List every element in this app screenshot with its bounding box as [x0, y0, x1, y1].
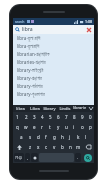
staticText: library — [43, 106, 56, 111]
button[interactable]: library-গ্রন্থাগার — [13, 74, 94, 82]
button[interactable]: 2 — [22, 112, 30, 122]
button[interactable]: j — [66, 132, 74, 142]
button[interactable]: d — [34, 132, 42, 142]
button[interactable]: Shift — [13, 142, 26, 152]
staticText: z — [29, 144, 32, 150]
button[interactable]: u — [62, 122, 70, 132]
button[interactable]: libraries — [72, 105, 87, 112]
staticText: librarian-গ্রন্থাগারিক — [17, 51, 50, 57]
staticText: m — [76, 144, 81, 150]
button[interactable]: q — [13, 122, 22, 132]
staticText: n — [69, 144, 72, 150]
staticText: 0 — [89, 114, 92, 120]
button[interactable]: libra-তুলা রাশি — [13, 34, 94, 42]
button[interactable]: library — [42, 105, 57, 112]
button[interactable]: n — [66, 142, 74, 152]
button[interactable]: library-পুস্তকাগার — [13, 90, 94, 98]
staticText: libra-তুলারাশি — [17, 43, 40, 49]
staticText: d — [37, 134, 40, 140]
button[interactable]: b — [58, 142, 66, 152]
staticText: 4 — [41, 114, 44, 120]
button[interactable]: y — [54, 122, 62, 132]
button[interactable]: z — [26, 142, 34, 152]
staticText: 9 — [81, 114, 84, 120]
staticText: ?1☺ — [15, 155, 23, 160]
staticText: libra — [16, 106, 25, 111]
staticText: , — [27, 155, 29, 160]
button[interactable]: libra — [13, 105, 27, 112]
button[interactable]: Libra — [27, 105, 42, 112]
button[interactable]: k — [74, 132, 82, 142]
button[interactable]: 5 — [46, 112, 54, 122]
staticText: libraries — [72, 105, 87, 112]
button[interactable]: , — [25, 153, 30, 162]
button[interactable]: i — [70, 122, 78, 132]
staticText: c — [45, 144, 48, 150]
button[interactable]: h — [58, 132, 66, 142]
button[interactable]: x — [34, 142, 42, 152]
staticText: libraries-গ্রন্থাগার — [17, 59, 46, 65]
button[interactable]: library-পাঠাগার — [13, 82, 94, 90]
button[interactable]: libraries-গ্রন্থাগার — [13, 58, 94, 66]
button[interactable]: 1 — [13, 112, 22, 122]
button[interactable]: 9 — [78, 112, 86, 122]
button[interactable]: f — [42, 132, 50, 142]
button[interactable]: c — [42, 142, 50, 152]
button[interactable]: w — [22, 122, 30, 132]
staticText: j — [69, 134, 71, 140]
staticText: 5 — [49, 114, 52, 120]
button[interactable]: . — [75, 153, 81, 162]
button[interactable]: 7 — [62, 112, 70, 122]
button[interactable]: o — [78, 122, 86, 132]
staticText: libra — [22, 26, 33, 33]
staticText: 2 — [25, 114, 28, 120]
staticText: 6 — [57, 114, 60, 120]
button[interactable]: v — [50, 142, 58, 152]
staticText: e — [33, 124, 36, 130]
button[interactable]: t — [46, 122, 54, 132]
button[interactable]: a — [17, 132, 26, 142]
button[interactable]: librarian-গ্রন্থাগারিক — [13, 50, 94, 58]
staticText: library-লাইব্রেরি — [17, 67, 44, 73]
staticText: p — [89, 124, 92, 130]
button[interactable]: Expand suggestions — [87, 105, 94, 112]
staticText: q — [16, 124, 19, 130]
button[interactable]: Search — [82, 153, 93, 162]
button[interactable]: Clear search — [86, 27, 92, 33]
button[interactable]: ?1☺ — [14, 153, 24, 162]
staticText: library-পুস্তকাগার — [17, 91, 45, 97]
staticText: y — [57, 124, 60, 130]
staticText: a — [20, 134, 23, 140]
button[interactable]: libra-তুলারাশি — [13, 42, 94, 50]
staticText: library-পাঠাগার — [17, 83, 43, 89]
button[interactable]: library-লাইব্রেরি — [13, 66, 94, 74]
button[interactable]: 0 — [86, 112, 94, 122]
button[interactable]: 3 — [30, 112, 38, 122]
button[interactable]: 4 — [38, 112, 46, 122]
button[interactable]: Lindis — [57, 105, 72, 112]
staticText: f — [45, 134, 47, 140]
button[interactable]: p — [86, 122, 94, 132]
staticText: w — [24, 124, 28, 130]
staticText: 3 — [33, 114, 36, 120]
staticText: o — [81, 124, 84, 130]
button[interactable]: r — [38, 122, 46, 132]
staticText: libra-তুলা রাশি — [17, 35, 41, 41]
staticText: 7 — [65, 114, 68, 120]
button[interactable]: g — [50, 132, 58, 142]
button[interactable]: Voice input — [31, 153, 38, 162]
button[interactable]: l — [82, 132, 90, 142]
button[interactable]: s — [26, 132, 34, 142]
button[interactable]: Backspace — [82, 142, 94, 152]
staticText: search — [15, 20, 25, 24]
button[interactable]: m — [74, 142, 82, 152]
button[interactable]: e — [30, 122, 38, 132]
staticText: l — [85, 134, 87, 140]
button[interactable]: libra — [13, 25, 94, 34]
staticText: b — [61, 144, 64, 150]
staticText: 1:08 — [85, 19, 92, 24]
button[interactable]: 8 — [70, 112, 78, 122]
button[interactable]: 6 — [54, 112, 62, 122]
staticText: 8 — [73, 114, 76, 120]
